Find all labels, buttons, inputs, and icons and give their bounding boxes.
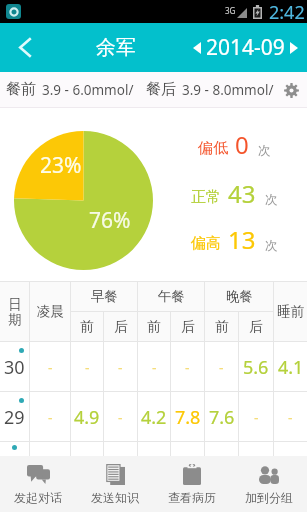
staticText: 偏低 [198, 139, 228, 158]
staticText: 餐后 [146, 80, 176, 99]
staticText: 早餐 [91, 288, 118, 305]
button[interactable]: Settings [280, 79, 302, 101]
button[interactable]: 发起对话 [0, 456, 76, 512]
staticText: 23% [40, 151, 82, 180]
staticText: 7.6 [209, 405, 235, 430]
staticText: 2014-09 [206, 33, 285, 62]
staticText: 发送知识 [91, 490, 139, 505]
button[interactable]: Back [0, 23, 51, 72]
staticText: 3G [225, 5, 236, 16]
staticText: 次 [265, 238, 278, 254]
staticText: 晚餐 [226, 288, 253, 305]
staticText: 偏高 [191, 234, 221, 253]
staticText: - [219, 358, 224, 377]
staticText: 后 [181, 318, 195, 335]
staticText: 日 期 [8, 296, 22, 328]
staticText: 30 [4, 355, 25, 380]
staticText: 13 [228, 223, 256, 256]
staticText: - [118, 408, 123, 427]
button[interactable]: 加到分组 [230, 456, 307, 512]
button[interactable]: 查看病历 [153, 456, 230, 512]
staticText: 76% [89, 206, 131, 235]
button[interactable]: Next month [287, 38, 301, 58]
staticText: - [288, 408, 293, 427]
staticText: 2:42 [269, 0, 305, 23]
staticText: 余军 [96, 35, 136, 60]
staticText: - [48, 358, 53, 377]
staticText: 前 [80, 318, 94, 335]
staticText: 餐前 [6, 80, 36, 99]
staticText: 43 [228, 177, 256, 210]
staticText: 3.9 - 8.0mmol/ [182, 81, 274, 99]
staticText: - [185, 358, 190, 377]
staticText: 次 [265, 192, 278, 208]
staticText: 4.1 [278, 355, 304, 380]
staticText: - [254, 408, 259, 427]
staticText: 4.2 [141, 405, 167, 430]
staticText: 后 [249, 318, 263, 335]
staticText: 查看病历 [168, 490, 216, 505]
staticText: 加到分组 [245, 490, 293, 505]
staticText: 正常 [191, 188, 221, 207]
staticText: 睡前 [277, 303, 304, 320]
staticText: 5.6 [243, 355, 269, 380]
staticText: - [152, 358, 157, 377]
staticText: 前 [215, 318, 229, 335]
staticText: 0 [235, 128, 249, 161]
staticText: 次 [258, 143, 271, 159]
staticText: 凌晨 [37, 303, 64, 320]
staticText: 29 [4, 405, 25, 430]
staticText: 发起对话 [14, 490, 62, 505]
staticText: - [118, 358, 123, 377]
staticText: 4.9 [74, 405, 100, 430]
staticText: - [48, 408, 53, 427]
staticText: - [85, 358, 90, 377]
staticText: 3.9 - 6.0mmol/ [42, 81, 134, 99]
button[interactable]: Previous month [190, 38, 204, 58]
staticText: 前 [147, 318, 161, 335]
button[interactable]: 发送知识 [76, 456, 153, 512]
staticText: 7.8 [175, 405, 201, 430]
staticText: 午餐 [158, 288, 185, 305]
staticText: 后 [114, 318, 128, 335]
